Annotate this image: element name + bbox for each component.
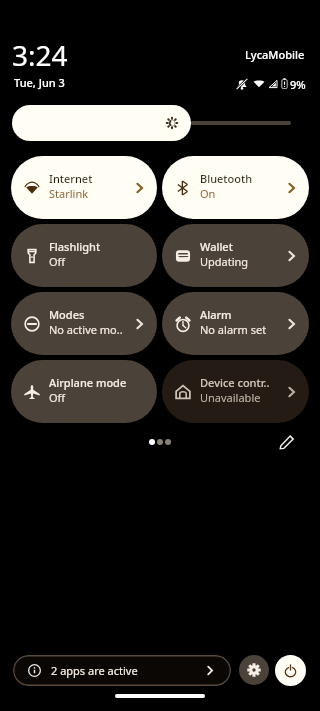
button[interactable] (12, 105, 309, 141)
button[interactable]: Internet (11, 156, 157, 219)
button[interactable]: Device contr.. (162, 360, 309, 423)
button[interactable]: Bluetooth (162, 156, 309, 219)
staticText: Modes (49, 307, 85, 322)
staticText: LycaMobile (245, 47, 305, 62)
button[interactable]: Flashlight (11, 224, 157, 287)
staticText: Unavailable (200, 390, 261, 405)
staticText: Wallet (200, 239, 233, 254)
staticText: No active mo.. (49, 322, 123, 337)
button[interactable]: 2 apps are active (13, 655, 231, 686)
button[interactable]: Airplane mode (11, 360, 157, 423)
button[interactable]: Settings (239, 655, 269, 685)
staticText: 9% (290, 77, 306, 90)
button[interactable]: Alarm (162, 292, 309, 355)
staticText: Off (49, 390, 66, 405)
staticText: 3:24 (12, 36, 68, 74)
staticText: Alarm (200, 307, 232, 322)
staticText: Flashlight (49, 239, 101, 254)
button[interactable]: Wallet (162, 224, 309, 287)
staticText: Bluetooth (200, 171, 253, 186)
staticText: Internet (49, 171, 93, 186)
staticText: On (200, 186, 216, 201)
staticText: Device contr.. (200, 375, 270, 390)
staticText: Airplane mode (49, 375, 127, 390)
staticText: No alarm set (200, 322, 267, 337)
staticText: Tue, Jun 3 (14, 75, 65, 90)
staticText: Starlink (49, 186, 89, 201)
staticText: Updating (200, 254, 249, 269)
button[interactable]: Edit tiles (276, 430, 299, 453)
button[interactable]: Power (275, 655, 306, 686)
staticText: Off (49, 254, 66, 269)
staticText: 2 apps are active (51, 663, 138, 678)
button[interactable]: Modes (11, 292, 157, 355)
